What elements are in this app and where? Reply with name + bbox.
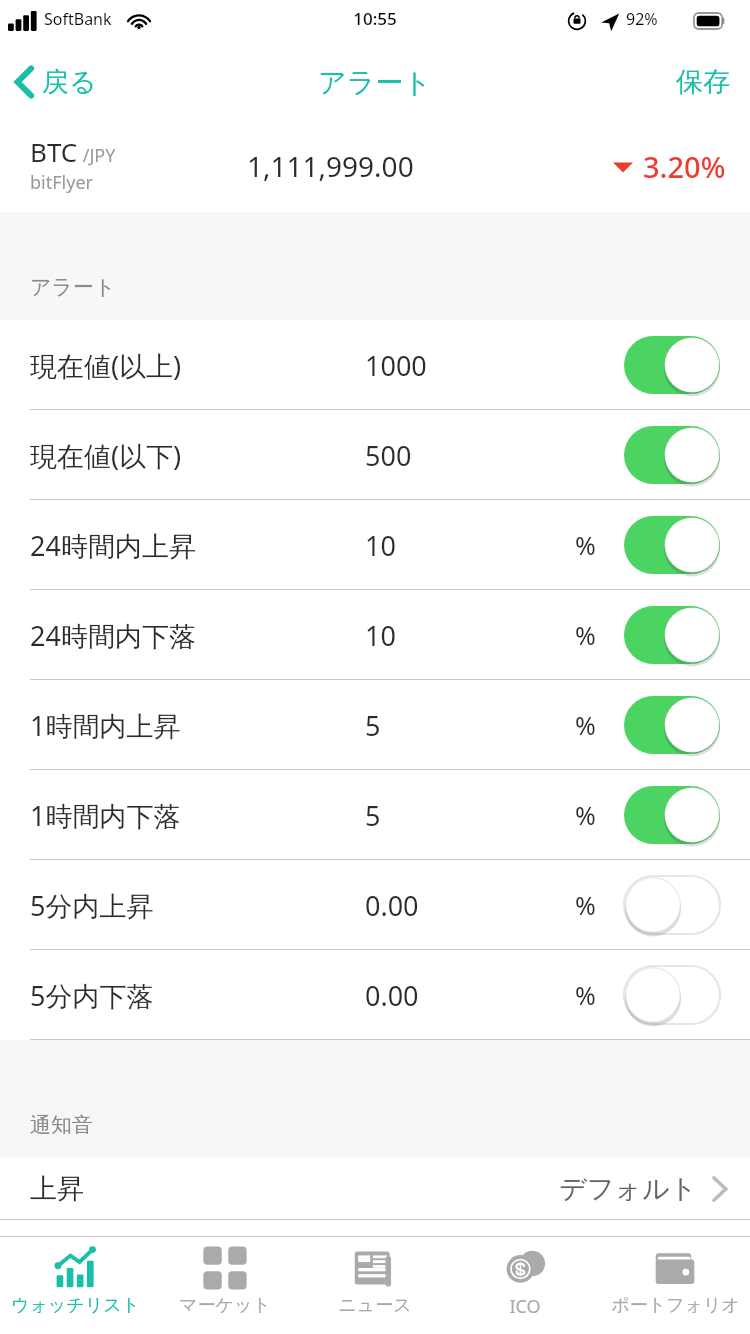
button[interactable]: Toggle on: [624, 606, 720, 664]
staticText: 3.20%: [643, 147, 726, 186]
staticText: 上昇: [30, 1172, 84, 1206]
staticText: 保存: [676, 65, 730, 99]
button[interactable]: ICO: [450, 1236, 600, 1334]
staticText: アラート: [30, 274, 116, 300]
staticText: 5分内上昇: [30, 887, 154, 924]
button[interactable]: 現在値(以上): [0, 320, 750, 410]
staticText: %: [575, 978, 596, 1012]
staticText: BTC: [30, 134, 78, 169]
button[interactable]: Toggle on: [624, 516, 720, 574]
staticText: ニュース: [338, 1294, 412, 1317]
button[interactable]: 上昇: [0, 1158, 750, 1220]
button[interactable]: ポートフォリオ: [600, 1236, 750, 1334]
staticText: /JPY: [78, 143, 116, 168]
staticText: bitFlyer: [30, 170, 93, 195]
staticText: 500: [365, 437, 412, 474]
staticText: 現在値(以下): [30, 437, 182, 474]
button[interactable]: Toggle on: [624, 426, 720, 484]
button[interactable]: 24時間内下落: [0, 590, 750, 680]
staticText: 24時間内上昇: [30, 527, 196, 564]
staticText: 1時間内下落: [30, 797, 181, 834]
staticText: %: [575, 528, 596, 562]
staticText: 5分内下落: [30, 977, 154, 1014]
staticText: デフォルト: [559, 1172, 698, 1206]
button[interactable]: 現在値(以下): [0, 410, 750, 500]
button[interactable]: マーケット: [150, 1236, 300, 1334]
staticText: 1,111,999.00: [247, 147, 414, 185]
button[interactable]: 5分内下落: [0, 950, 750, 1040]
button[interactable]: 1時間内上昇: [0, 680, 750, 770]
staticText: 10: [365, 527, 396, 564]
button[interactable]: Toggle on: [624, 696, 720, 754]
staticText: 戻る: [42, 65, 97, 99]
button[interactable]: ウォッチリスト: [0, 1236, 150, 1334]
staticText: マーケット: [179, 1294, 271, 1317]
staticText: 10:55: [0, 7, 750, 30]
button[interactable]: 1時間内下落: [0, 770, 750, 860]
staticText: 通知音: [30, 1112, 93, 1138]
staticText: %: [575, 618, 596, 652]
staticText: 現在値(以上): [30, 347, 182, 384]
staticText: SoftBank: [44, 8, 112, 30]
staticText: アラート: [318, 65, 432, 100]
button[interactable]: Toggle off: [624, 966, 720, 1024]
staticText: 92%: [626, 8, 658, 30]
staticText: 1000: [365, 347, 427, 384]
button[interactable]: Toggle on: [624, 336, 720, 394]
staticText: 5: [365, 707, 381, 744]
staticText: 0.00: [365, 977, 419, 1014]
button[interactable]: 保存: [656, 53, 750, 111]
staticText: 24時間内下落: [30, 617, 196, 654]
button[interactable]: 5分内上昇: [0, 860, 750, 950]
staticText: ICO: [509, 1294, 541, 1319]
button[interactable]: Toggle on: [624, 786, 720, 844]
button[interactable]: 24時間内上昇: [0, 500, 750, 590]
staticText: ポートフォリオ: [611, 1294, 740, 1317]
button[interactable]: Toggle off: [624, 876, 720, 934]
staticText: %: [575, 888, 596, 922]
button[interactable]: ニュース: [300, 1236, 450, 1334]
staticText: %: [575, 798, 596, 832]
staticText: 10: [365, 617, 396, 654]
staticText: 0.00: [365, 887, 419, 924]
staticText: ウォッチリスト: [11, 1294, 140, 1317]
button[interactable]: 戻る: [0, 55, 111, 109]
staticText: %: [575, 708, 596, 742]
staticText: 1時間内上昇: [30, 707, 181, 744]
staticText: 5: [365, 797, 381, 834]
